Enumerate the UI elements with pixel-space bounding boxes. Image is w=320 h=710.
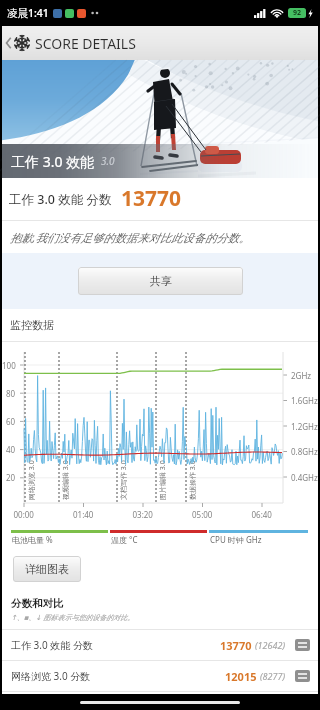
staticText: 13770	[220, 638, 252, 653]
staticText: 12015	[225, 669, 257, 684]
staticText: 详细图表	[25, 562, 69, 576]
staticText: 凌晨1:41	[7, 6, 49, 20]
staticText: 工作 3.0 效能 分数	[11, 638, 93, 652]
staticText: 网络浏览 3.0 分数	[11, 669, 91, 683]
staticText: 工作 3.0 效能 分数	[9, 191, 112, 208]
staticText: 电池电量 %	[12, 534, 53, 545]
button[interactable]: Home	[80, 701, 240, 704]
other: Same as your device	[295, 670, 310, 682]
staticText: 工作 3.0 效能	[11, 152, 95, 171]
staticText: 共享	[150, 274, 172, 288]
button[interactable]: Back	[2, 26, 14, 60]
staticText: 分数和对比	[11, 597, 64, 610]
other: Same as your device	[295, 639, 310, 651]
button[interactable]: 共享	[78, 267, 243, 295]
staticText: (8277)	[260, 670, 286, 682]
staticText: SCORE DETAILS	[35, 34, 136, 53]
staticText: 抱歉,我们没有足够的数据来对比此设备的分数。	[10, 230, 251, 245]
staticText: 温度 °C	[111, 534, 138, 545]
staticText: 92	[293, 8, 302, 18]
button[interactable]: 详细图表	[13, 556, 81, 582]
button[interactable]: 网络浏览 3.0 分数	[2, 661, 318, 691]
staticText: 监控数据	[10, 318, 54, 332]
staticText: 3.0	[101, 154, 115, 168]
button[interactable]: 工作 3.0 效能 分数	[2, 630, 318, 660]
staticText: 13770	[121, 184, 182, 213]
staticText: (12642)	[255, 639, 286, 651]
staticText: ↑、▪、↓ 图标表示与您的设备的对比。	[11, 613, 135, 623]
staticText: CPU 时钟 GHz	[210, 534, 262, 545]
